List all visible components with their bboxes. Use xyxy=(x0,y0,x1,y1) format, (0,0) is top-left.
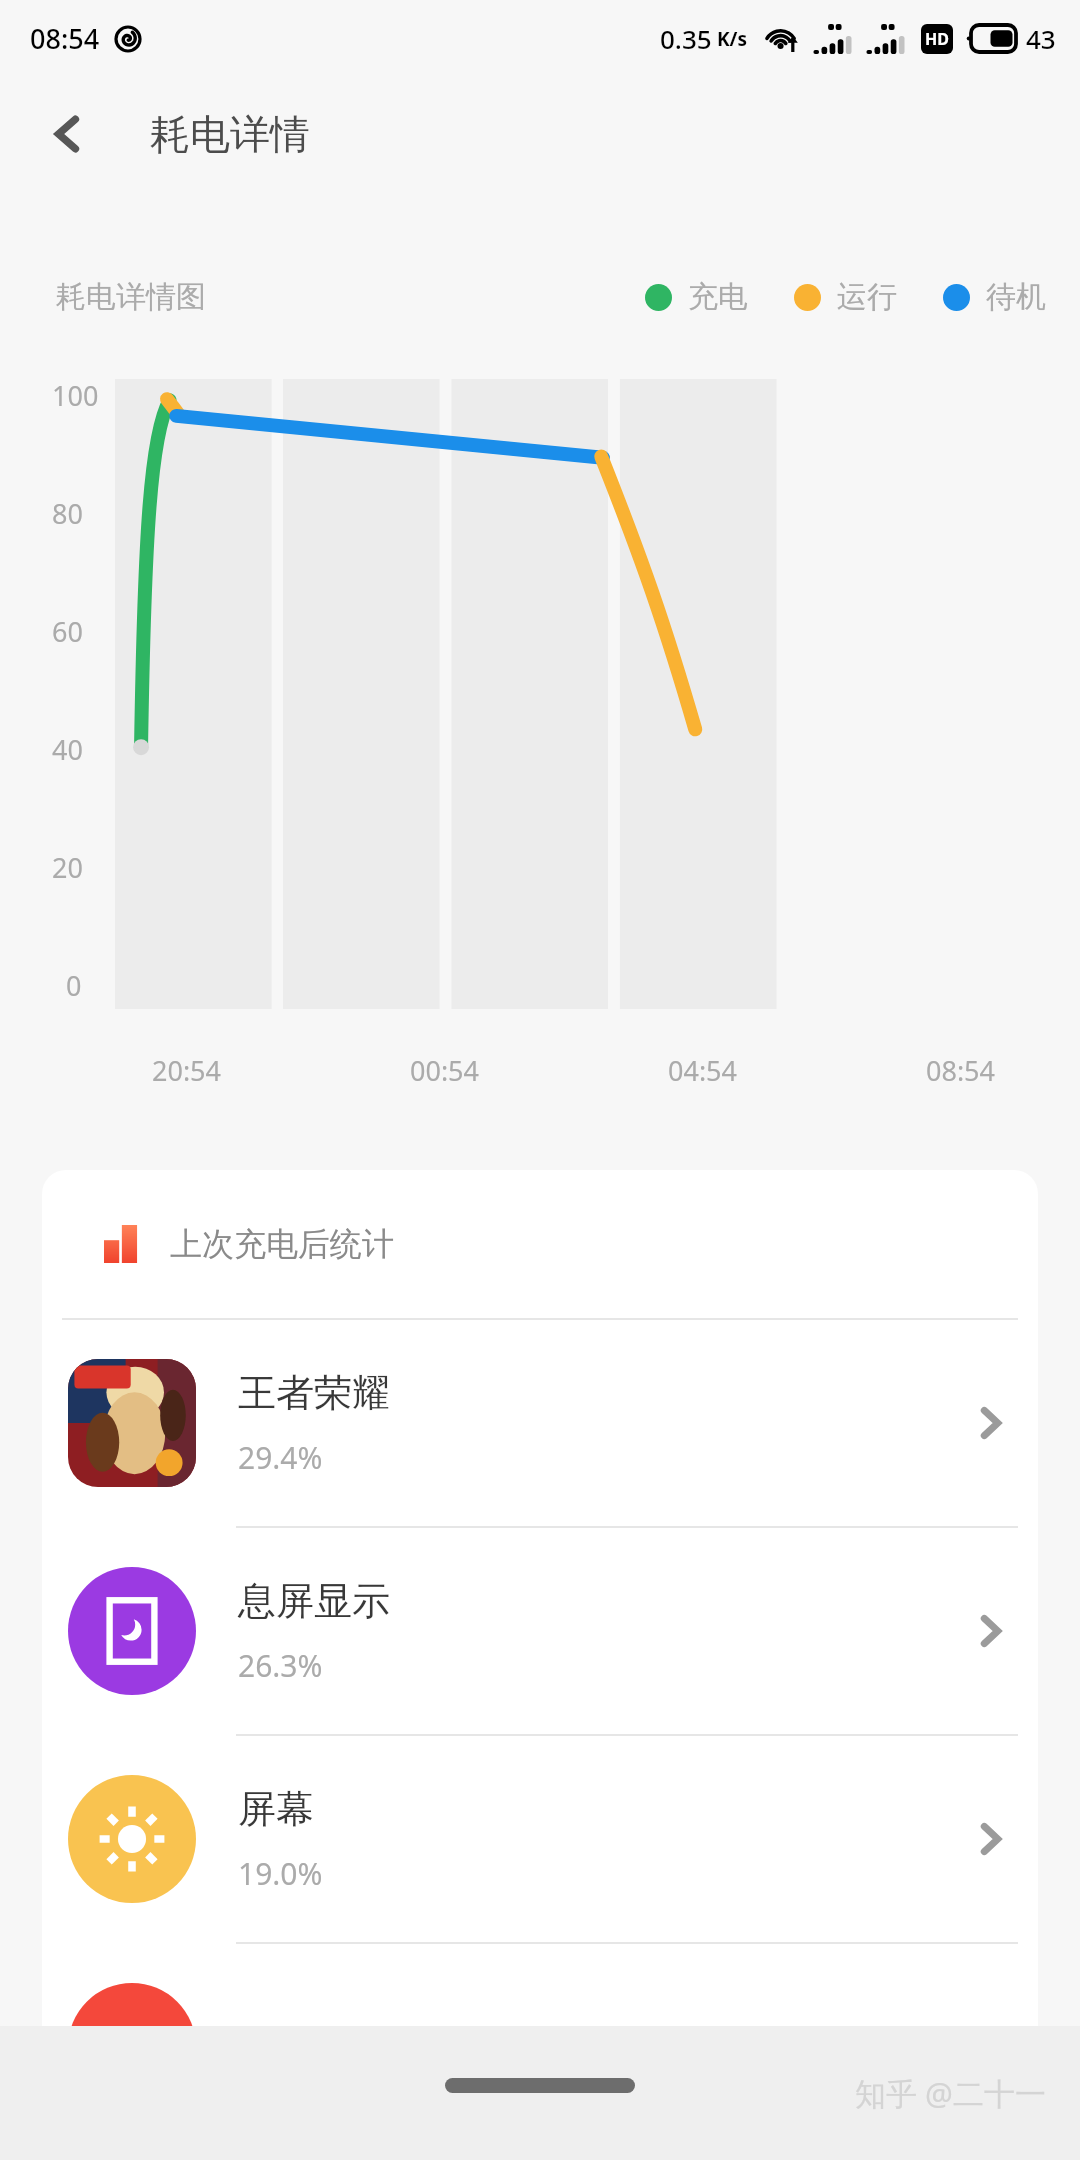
staticText: 待机 xyxy=(986,278,1046,316)
staticText: K/s xyxy=(717,26,748,52)
staticText: 04:54 xyxy=(668,1052,738,1089)
staticText: 80 xyxy=(52,495,83,532)
staticText: 上次充电后统计 xyxy=(170,1224,394,1264)
staticText: 屏幕 xyxy=(238,1785,314,1833)
button[interactable]: 屏幕 xyxy=(42,1736,1038,1944)
staticText: 运行 xyxy=(837,278,897,316)
staticText: HD xyxy=(925,28,949,50)
button[interactable]: Back xyxy=(24,91,110,177)
staticText: 08:54 xyxy=(30,20,100,57)
staticText: 100 xyxy=(52,377,99,414)
staticText: 知乎 @二十一 xyxy=(855,2072,1046,2114)
staticText: 充电 xyxy=(688,278,748,316)
staticText: 60 xyxy=(52,613,83,650)
staticText: 0 xyxy=(66,967,82,1004)
staticText: 耗电详情图 xyxy=(56,278,206,316)
staticText: 43 xyxy=(1026,21,1056,56)
staticText: 20 xyxy=(52,849,83,886)
staticText: 息屏显示 xyxy=(238,1577,390,1625)
staticText: 26.3% xyxy=(238,1645,323,1686)
staticText: 29.4% xyxy=(238,1437,323,1478)
staticText: 20:54 xyxy=(152,1052,222,1089)
staticText: 19.0% xyxy=(238,1853,323,1894)
button[interactable]: 息屏显示 xyxy=(42,1528,1038,1736)
staticText: 00:54 xyxy=(410,1052,480,1089)
button[interactable]: 手机待机 xyxy=(42,1944,1038,2150)
staticText: 40 xyxy=(52,731,83,768)
button[interactable]: 王者荣耀 xyxy=(42,1320,1038,1528)
staticText: 08:54 xyxy=(926,1052,996,1089)
staticText: 手机待机 xyxy=(238,2023,390,2071)
staticText: 王者荣耀 xyxy=(238,1369,390,1417)
staticText: 0.35 xyxy=(660,21,712,56)
staticText: 耗电详情 xyxy=(150,109,310,159)
